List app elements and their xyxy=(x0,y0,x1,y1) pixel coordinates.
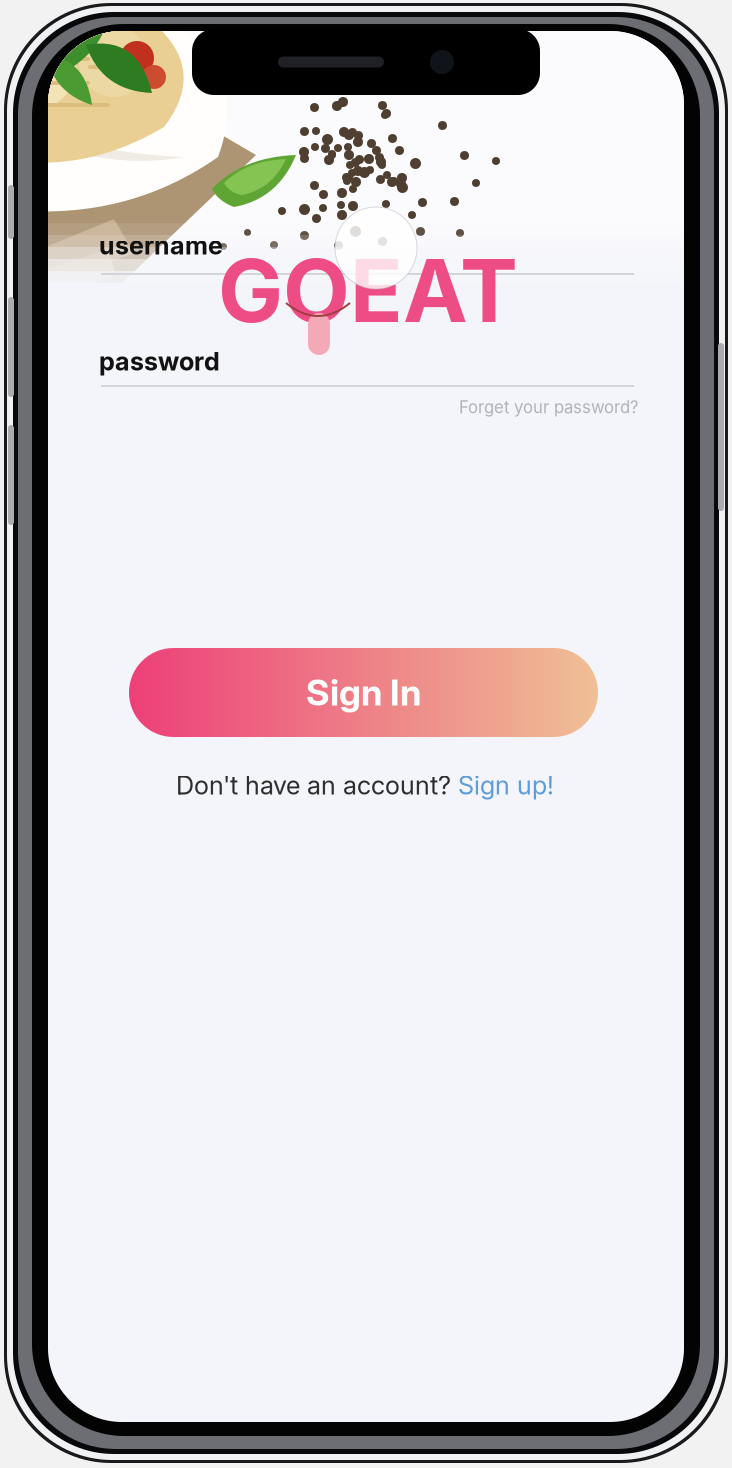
staticText: Don't have an account? xyxy=(176,770,458,801)
staticText: Sign In xyxy=(306,671,421,714)
staticText: Forget your password? xyxy=(459,397,639,417)
staticText: Sign up! xyxy=(458,770,554,801)
staticText: username xyxy=(99,230,223,261)
staticText: password xyxy=(99,346,220,377)
staticText: GOEAT xyxy=(218,238,518,343)
button[interactable]: Forget your password? xyxy=(459,397,639,417)
button[interactable]: Sign up! xyxy=(458,770,554,801)
button[interactable]: Sign In xyxy=(129,648,598,737)
